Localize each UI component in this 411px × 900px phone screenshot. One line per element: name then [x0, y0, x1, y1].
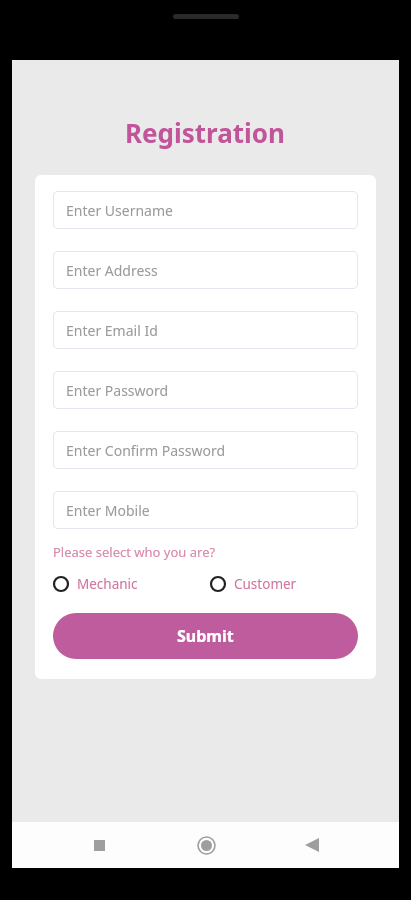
staticText: Registration: [125, 115, 286, 150]
button[interactable]: Enter Password: [53, 371, 358, 409]
button[interactable]: Back: [292, 825, 332, 865]
staticText: Customer: [234, 575, 297, 593]
button[interactable]: Enter Email Id: [53, 311, 358, 349]
button[interactable]: Enter Address: [53, 251, 358, 289]
button[interactable]: Enter Username: [53, 191, 358, 229]
staticText: Submit: [177, 625, 234, 647]
button[interactable]: Enter Confirm Password: [53, 431, 358, 469]
button[interactable]: Home: [186, 825, 226, 865]
staticText: Enter Password: [66, 381, 169, 400]
staticText: Mechanic: [77, 575, 138, 593]
staticText: Enter Mobile: [66, 501, 150, 520]
button[interactable]: Recent apps: [79, 825, 119, 865]
button[interactable]: Enter Mobile: [53, 491, 358, 529]
staticText: Enter Email Id: [66, 321, 158, 340]
button[interactable]: Customer: [210, 573, 297, 595]
staticText: Enter Confirm Password: [66, 441, 226, 460]
staticText: Enter Address: [66, 261, 158, 280]
staticText: Please select who you are?: [53, 543, 216, 561]
button[interactable]: Mechanic: [53, 573, 138, 595]
button[interactable]: Submit: [53, 613, 358, 659]
staticText: Enter Username: [66, 201, 173, 220]
